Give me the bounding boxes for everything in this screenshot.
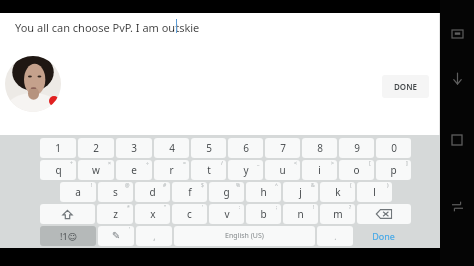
button[interactable]: b bbox=[246, 204, 281, 224]
button[interactable]: u bbox=[265, 160, 300, 180]
button[interactable]: t bbox=[191, 160, 226, 180]
staticText: : bbox=[239, 204, 241, 211]
staticText: ( bbox=[350, 182, 352, 189]
staticText: 1 bbox=[55, 141, 61, 155]
staticText: 3 bbox=[131, 141, 137, 155]
staticText: 9 bbox=[354, 141, 360, 155]
button[interactable]: k bbox=[320, 182, 355, 202]
button[interactable]: r bbox=[154, 160, 189, 180]
staticText: × bbox=[108, 160, 111, 167]
button[interactable]: z bbox=[97, 204, 133, 224]
button[interactable]: j bbox=[283, 182, 318, 202]
button[interactable]: !1☺ bbox=[40, 226, 96, 246]
button[interactable]: x bbox=[135, 204, 170, 224]
button[interactable]: Done bbox=[355, 226, 411, 246]
staticText: h bbox=[260, 185, 267, 199]
staticText: < bbox=[294, 160, 297, 167]
staticText: 7 bbox=[280, 141, 286, 155]
button[interactable]: Shift bbox=[40, 204, 95, 224]
staticText: ' bbox=[129, 226, 131, 233]
staticText: 2 bbox=[93, 141, 99, 155]
staticText: ? bbox=[349, 204, 352, 211]
staticText: 4 bbox=[169, 141, 175, 155]
button[interactable]: m bbox=[320, 204, 355, 224]
button[interactable]: w bbox=[78, 160, 114, 180]
staticText: f bbox=[188, 185, 192, 199]
button[interactable]: Home bbox=[446, 129, 468, 151]
staticText: * bbox=[127, 204, 130, 211]
staticText: ' bbox=[202, 204, 204, 211]
staticText: ^ bbox=[275, 182, 278, 189]
button[interactable]: . bbox=[317, 226, 353, 246]
button[interactable]: 0 bbox=[376, 138, 411, 158]
button[interactable]: q bbox=[40, 160, 76, 180]
staticText: e bbox=[131, 163, 137, 177]
staticText: ÷ bbox=[146, 160, 149, 167]
button[interactable]: n bbox=[283, 204, 318, 224]
staticText: q bbox=[55, 163, 62, 177]
staticText: @ bbox=[125, 182, 130, 189]
staticText: DONE bbox=[394, 81, 417, 92]
staticText: z bbox=[113, 207, 118, 221]
button[interactable]: p bbox=[376, 160, 411, 180]
button[interactable]: Hide keyboard bbox=[446, 23, 468, 45]
staticText: b bbox=[260, 207, 267, 221]
staticText: & bbox=[311, 182, 315, 189]
button[interactable]: Back bbox=[446, 67, 468, 89]
button[interactable]: l bbox=[357, 182, 392, 202]
staticText: i bbox=[318, 163, 321, 177]
button[interactable]: 7 bbox=[265, 138, 300, 158]
staticText: p bbox=[390, 163, 397, 177]
button[interactable]: , bbox=[136, 226, 172, 246]
staticText: !1☺ bbox=[60, 230, 77, 242]
button[interactable]: h bbox=[246, 182, 281, 202]
button[interactable]: g bbox=[209, 182, 244, 202]
staticText: ! bbox=[313, 204, 315, 211]
button[interactable]: s bbox=[98, 182, 133, 202]
staticText: English (US) bbox=[225, 231, 264, 241]
staticText: 0 bbox=[391, 141, 397, 155]
button[interactable]: DONE bbox=[382, 75, 429, 98]
staticText: m bbox=[333, 207, 343, 221]
staticText: d bbox=[149, 185, 156, 199]
staticText: g bbox=[223, 185, 230, 199]
button[interactable]: o bbox=[339, 160, 374, 180]
staticText: $ bbox=[201, 182, 204, 189]
staticText: w bbox=[92, 163, 100, 177]
staticText: ) bbox=[387, 182, 389, 189]
staticText: ] bbox=[406, 160, 408, 167]
staticText: y bbox=[243, 163, 249, 177]
button[interactable]: c bbox=[172, 204, 207, 224]
button[interactable]: 2 bbox=[78, 138, 114, 158]
staticText: 8 bbox=[317, 141, 323, 155]
button[interactable]: i bbox=[302, 160, 337, 180]
button[interactable]: English (US) bbox=[174, 226, 315, 246]
staticText: [ bbox=[369, 160, 371, 167]
staticText: / bbox=[221, 160, 223, 167]
staticText: % bbox=[236, 182, 241, 189]
staticText: o bbox=[353, 163, 360, 177]
staticText: a bbox=[75, 185, 81, 199]
staticText: Done bbox=[372, 230, 395, 242]
button[interactable]: e bbox=[116, 160, 152, 180]
button[interactable]: 9 bbox=[339, 138, 374, 158]
button[interactable]: 1 bbox=[40, 138, 76, 158]
button[interactable]: Backspace bbox=[357, 204, 411, 224]
button[interactable]: 4 bbox=[154, 138, 189, 158]
staticText: , bbox=[153, 230, 156, 242]
button[interactable]: y bbox=[228, 160, 263, 180]
button[interactable]: 6 bbox=[228, 138, 263, 158]
button[interactable]: Handwriting bbox=[98, 226, 134, 246]
button[interactable]: Recent apps bbox=[446, 195, 468, 217]
button[interactable]: f bbox=[172, 182, 207, 202]
staticText: 5 bbox=[206, 141, 212, 155]
button[interactable]: a bbox=[60, 182, 96, 202]
button[interactable]: 3 bbox=[116, 138, 152, 158]
staticText: = bbox=[183, 160, 186, 167]
button[interactable]: v bbox=[209, 204, 244, 224]
button[interactable]: 8 bbox=[302, 138, 337, 158]
button[interactable]: d bbox=[135, 182, 170, 202]
button[interactable]: Video thumbnail bbox=[5, 56, 61, 112]
button[interactable]: 5 bbox=[191, 138, 226, 158]
staticText: " bbox=[164, 204, 167, 211]
